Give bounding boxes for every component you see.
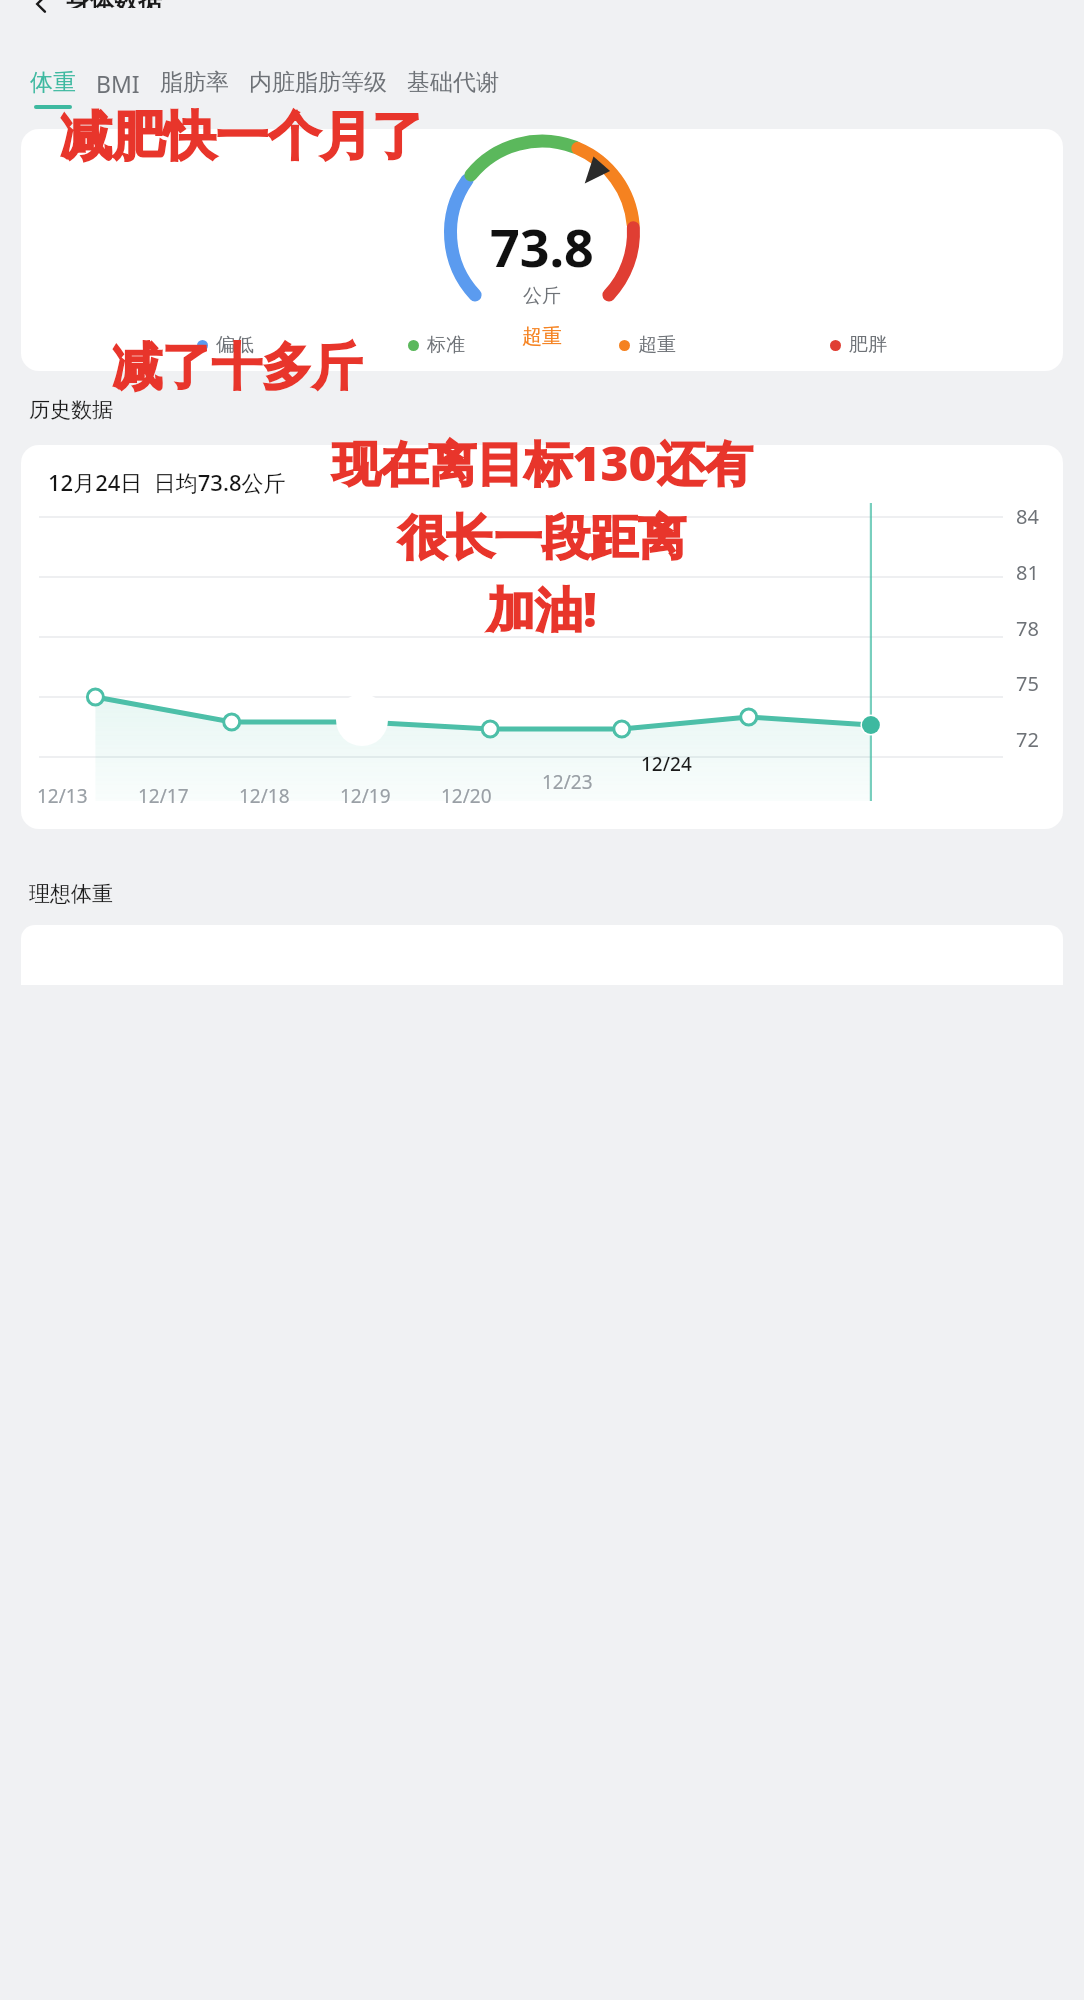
button[interactable]: 脂肪率 (160, 68, 229, 97)
staticText: 理想体重 (29, 881, 113, 907)
staticText: 加油! (487, 576, 597, 642)
staticText: 73.8 (490, 211, 594, 282)
staticText: 12/13 (37, 783, 88, 809)
staticText: 12/17 (138, 783, 189, 809)
button[interactable]: BMI (96, 68, 140, 99)
staticText: 12/20 (441, 783, 492, 809)
button[interactable]: 偏低 (197, 333, 254, 357)
button[interactable]: 内脏脂肪等级 (249, 68, 387, 97)
staticText: 12/18 (239, 783, 290, 809)
staticText: 72 (1016, 726, 1039, 753)
staticText: 81 (1016, 559, 1039, 586)
button[interactable]: 超重 (619, 333, 676, 357)
staticText: 12/23 (542, 769, 593, 795)
button[interactable]: 12月24日 日均73.8公斤 (21, 445, 1063, 829)
staticText: 身体数据 (66, 0, 162, 8)
staticText: BMI (96, 68, 140, 99)
button[interactable]: 标准 (408, 333, 465, 357)
staticText: 偏低 (216, 333, 254, 357)
button[interactable]: 肥胖 (830, 333, 887, 357)
staticText: 脂肪率 (160, 68, 229, 97)
staticText: 现在离目标130还有 (332, 430, 753, 496)
staticText: 基础代谢 (407, 68, 499, 97)
staticText: 体重 (30, 68, 76, 97)
staticText: 78 (1016, 615, 1039, 642)
staticText: 很长一段距离 (398, 508, 686, 568)
staticText: 75 (1016, 670, 1039, 697)
staticText: 超重 (522, 324, 562, 349)
button[interactable]: Add record (336, 694, 388, 746)
staticText: 内脏脂肪等级 (249, 68, 387, 97)
button[interactable]: Back (30, 0, 54, 14)
staticText: 历史数据 (29, 397, 113, 423)
staticText: 标准 (427, 333, 465, 357)
button[interactable]: 基础代谢 (407, 68, 499, 97)
button[interactable]: 体重 (30, 68, 76, 109)
staticText: 肥胖 (849, 333, 887, 357)
staticText: 公斤 (523, 284, 561, 308)
staticText: 减了十多斤 (112, 336, 362, 399)
staticText: 84 (1016, 503, 1039, 530)
staticText: 12月24日 日均73.8公斤 (48, 467, 286, 497)
button[interactable]: 73.8 (21, 129, 1063, 371)
staticText: 减肥快一个月了 (60, 104, 424, 170)
staticText: 超重 (638, 333, 676, 357)
staticText: 12/24 (641, 751, 692, 777)
staticText: 12/19 (340, 783, 391, 809)
